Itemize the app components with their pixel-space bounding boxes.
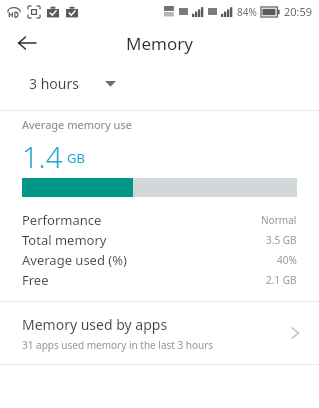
button[interactable]: Back bbox=[8, 24, 46, 62]
staticText: GB bbox=[67, 149, 85, 167]
staticText: Total memory bbox=[22, 231, 107, 249]
button[interactable]: Memory used by apps bbox=[0, 302, 319, 364]
staticText: 2.1 GB bbox=[266, 273, 297, 287]
staticText: 40% bbox=[277, 253, 297, 267]
staticText: Free bbox=[22, 271, 49, 289]
staticText: 31 apps used memory in the last 3 hours bbox=[22, 338, 214, 352]
staticText: 20:59 bbox=[284, 4, 313, 19]
staticText: Memory bbox=[126, 32, 193, 55]
staticText: 3.5 GB bbox=[266, 233, 297, 247]
button[interactable]: 3 hours bbox=[0, 64, 319, 102]
staticText: 3 hours bbox=[29, 74, 79, 93]
staticText: Memory used by apps bbox=[22, 315, 168, 334]
staticText: Normal bbox=[261, 213, 297, 227]
staticText: Performance bbox=[22, 211, 102, 229]
staticText: Average used (%) bbox=[22, 251, 127, 269]
staticText: 84% bbox=[237, 5, 257, 19]
staticText: 1.4 bbox=[22, 137, 63, 171]
staticText: Average memory use bbox=[22, 117, 132, 132]
